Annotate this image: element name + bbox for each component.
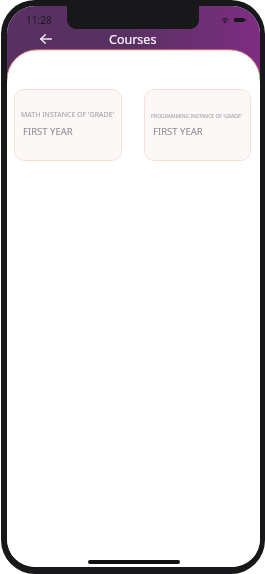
staticText: 11:28 [26, 13, 52, 27]
button[interactable]: Back [35, 28, 57, 50]
staticText: FIRST YEAR [23, 125, 73, 138]
staticText: PROGRAMMING INSTANCE OF 'GRADE' [151, 113, 242, 120]
button[interactable]: MATH INSTANCE OF 'GRADE' [14, 89, 122, 161]
staticText: FIRST YEAR [153, 125, 203, 138]
staticText: Courses [109, 31, 157, 48]
staticText: MATH INSTANCE OF 'GRADE' [21, 110, 115, 120]
button[interactable]: PROGRAMMING INSTANCE OF 'GRADE' [144, 89, 251, 161]
